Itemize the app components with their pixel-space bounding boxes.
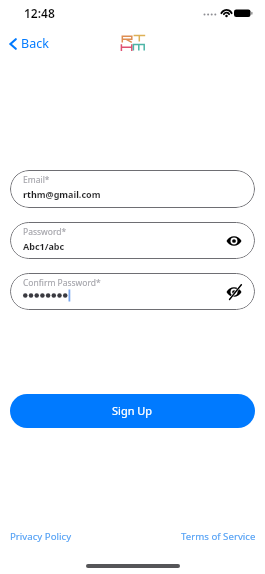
button[interactable]: Email* bbox=[10, 170, 255, 208]
staticText: Confirm Password* bbox=[23, 277, 101, 289]
staticText: Sign Up bbox=[112, 403, 153, 418]
staticText: Abc1/abc bbox=[23, 240, 65, 252]
button[interactable]: Privacy Policy bbox=[8, 528, 74, 545]
button[interactable]: Confirm Password* bbox=[10, 273, 255, 310]
staticText: Email* bbox=[23, 174, 50, 186]
staticText: Privacy Policy bbox=[10, 530, 72, 543]
staticText: rthm@gmail.com bbox=[23, 188, 101, 200]
staticText: 12:48 bbox=[24, 5, 55, 21]
button[interactable]: Hide password bbox=[223, 230, 245, 252]
button[interactable]: Show password bbox=[223, 281, 245, 303]
staticText: Back bbox=[21, 35, 49, 52]
staticText: Password* bbox=[23, 226, 67, 238]
button[interactable]: Back bbox=[5, 33, 53, 54]
staticText: Terms of Service bbox=[181, 530, 256, 543]
button[interactable]: Password* bbox=[10, 222, 255, 259]
button[interactable]: Terms of Service bbox=[179, 528, 258, 545]
button[interactable]: Sign Up bbox=[10, 394, 255, 428]
